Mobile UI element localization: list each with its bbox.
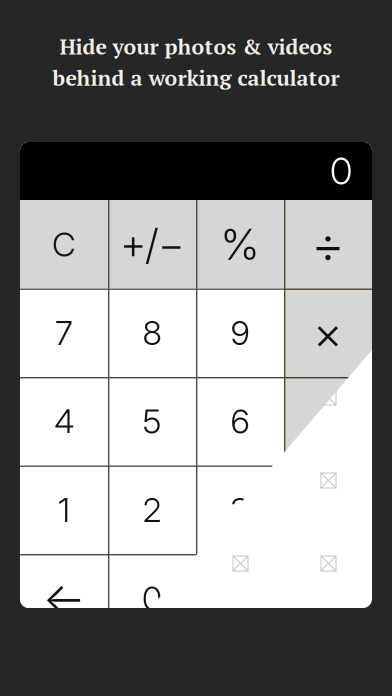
staticText: − xyxy=(311,391,344,452)
button[interactable]: + xyxy=(284,465,372,554)
button[interactable]: − xyxy=(284,377,372,465)
staticText: 0 xyxy=(142,578,162,618)
staticText: . xyxy=(236,578,244,618)
button[interactable]: 2 xyxy=(108,465,196,554)
staticText: 4 xyxy=(54,401,74,441)
button[interactable]: 0 xyxy=(108,554,196,642)
image xyxy=(144,306,160,322)
button[interactable]: 5 xyxy=(108,377,196,465)
staticText: ÷ xyxy=(311,213,345,276)
staticText: behind a working calculator xyxy=(52,63,339,92)
staticText: 7 xyxy=(55,313,73,353)
staticText: 0 xyxy=(330,148,352,194)
staticText: Hide your photos & videos xyxy=(59,32,332,60)
button[interactable]: % xyxy=(196,200,284,288)
button[interactable]: ← xyxy=(20,554,108,642)
image xyxy=(232,306,248,322)
button[interactable]: C xyxy=(20,200,108,288)
image xyxy=(232,555,248,571)
button[interactable]: 1 xyxy=(20,465,108,554)
staticText: 1 xyxy=(58,490,70,530)
image xyxy=(56,223,72,239)
staticText: 6 xyxy=(230,401,249,441)
image xyxy=(56,306,72,322)
button[interactable]: 8 xyxy=(108,288,196,377)
staticText: × xyxy=(313,305,343,360)
staticText: 9 xyxy=(230,313,249,353)
image xyxy=(320,555,336,571)
staticText: 3 xyxy=(230,490,250,530)
image xyxy=(232,223,248,239)
button[interactable]: 3 xyxy=(196,465,284,554)
staticText: = xyxy=(313,571,343,626)
button[interactable]: . xyxy=(196,554,284,642)
button[interactable]: 7 xyxy=(20,288,108,377)
staticText: + xyxy=(311,479,344,540)
button[interactable]: ÷ xyxy=(284,200,372,288)
button[interactable]: × xyxy=(284,288,372,377)
image xyxy=(320,389,336,405)
staticText: 5 xyxy=(142,401,161,441)
staticText: 8 xyxy=(142,313,161,353)
button[interactable]: 4 xyxy=(20,377,108,465)
button[interactable]: 9 xyxy=(196,288,284,377)
staticText: ← xyxy=(42,571,85,626)
staticText: +/− xyxy=(120,219,183,269)
staticText: C xyxy=(52,224,76,264)
staticText: % xyxy=(220,218,260,270)
button[interactable]: 6 xyxy=(196,377,284,465)
staticText: 2 xyxy=(142,490,161,530)
button[interactable]: = xyxy=(284,554,372,642)
image xyxy=(320,472,336,488)
button[interactable]: +/− xyxy=(108,200,196,288)
